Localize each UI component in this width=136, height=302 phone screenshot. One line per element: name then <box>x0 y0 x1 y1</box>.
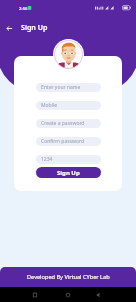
staticText: Sign Up <box>21 22 48 32</box>
staticText: Sign Up <box>57 169 80 177</box>
button[interactable]: Back <box>3 22 16 35</box>
staticText: Create a password <box>41 120 85 127</box>
button[interactable]: Confirm password <box>36 137 101 146</box>
staticText: Mobile <box>41 102 58 109</box>
button[interactable]: Enter your name <box>36 83 101 92</box>
button[interactable]: Home <box>60 287 76 302</box>
staticText: Developed By Virtual CYber Lab <box>27 273 110 281</box>
staticText: 2:56 <box>19 5 28 11</box>
staticText: Confirm password <box>41 138 84 145</box>
button[interactable]: Recent apps <box>27 287 43 302</box>
button[interactable]: Developed By Virtual CYber Lab <box>0 267 136 287</box>
staticText: Enter your name <box>41 84 81 91</box>
button[interactable]: Back <box>90 287 106 302</box>
staticText: 1234 <box>41 156 53 163</box>
button[interactable]: Mobile <box>36 101 101 110</box>
button[interactable]: 1234 <box>36 155 101 164</box>
button[interactable]: Create a password <box>36 119 101 128</box>
button[interactable]: Sign Up <box>36 167 101 178</box>
